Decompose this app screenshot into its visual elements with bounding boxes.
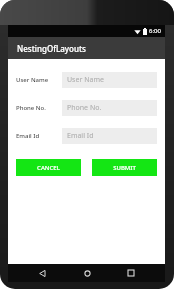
- staticText: SUBMIT: [113, 164, 136, 172]
- staticText: CANCEL: [37, 164, 60, 172]
- staticText: Email Id: [67, 131, 94, 141]
- staticText: User Name: [16, 76, 56, 84]
- button[interactable]: CANCEL: [16, 159, 81, 176]
- staticText: NestingOfLayouts: [17, 43, 86, 54]
- button[interactable]: Email Id: [62, 128, 157, 144]
- button[interactable]: Phone No.: [62, 100, 157, 116]
- button[interactable]: User Name: [62, 72, 157, 88]
- button[interactable]: Home: [76, 264, 98, 282]
- staticText: 6:00: [149, 27, 161, 35]
- staticText: Email Id: [16, 132, 56, 140]
- button[interactable]: SUBMIT: [92, 159, 157, 176]
- staticText: Phone No.: [67, 103, 102, 113]
- button[interactable]: Back: [31, 264, 53, 282]
- button[interactable]: Recent apps: [120, 264, 142, 282]
- staticText: User Name: [67, 75, 104, 85]
- staticText: Phone No.: [16, 104, 56, 112]
